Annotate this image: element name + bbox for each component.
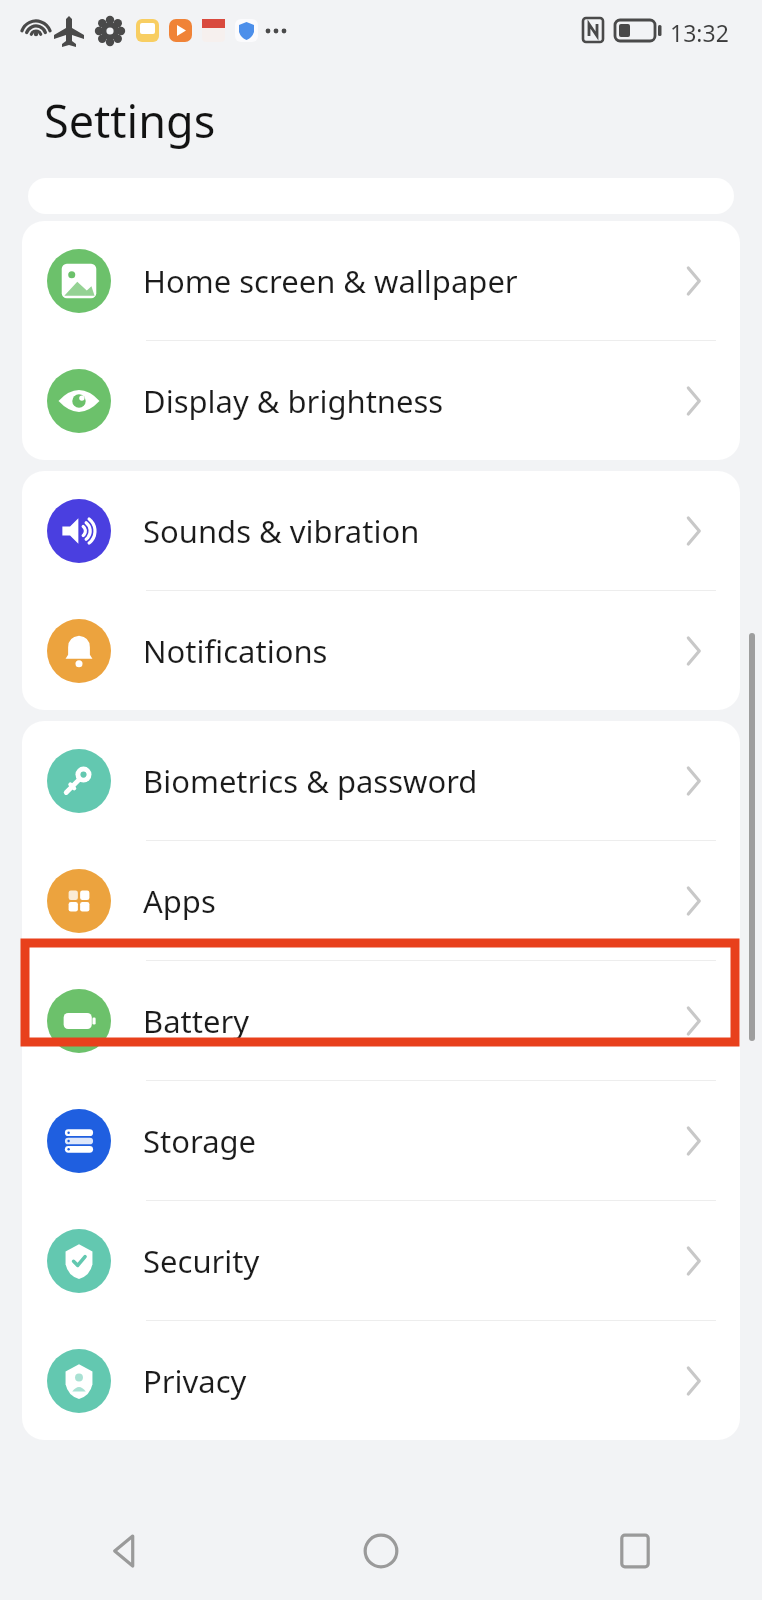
button[interactable]: Privacy bbox=[22, 1321, 740, 1440]
button[interactable]: Notifications bbox=[22, 591, 740, 710]
button[interactable]: Back bbox=[0, 1502, 254, 1600]
button[interactable]: Sounds & vibration bbox=[22, 471, 740, 590]
button[interactable]: Home bbox=[254, 1502, 508, 1600]
button[interactable]: Home screen & wallpaper bbox=[22, 221, 740, 340]
staticText: Settings bbox=[44, 90, 216, 151]
staticText: Biometrics & password bbox=[143, 760, 478, 802]
button[interactable]: Biometrics & password bbox=[22, 721, 740, 840]
staticText: Sounds & vibration bbox=[143, 510, 420, 552]
staticText: Display & brightness bbox=[143, 380, 444, 422]
staticText: Privacy bbox=[143, 1360, 247, 1402]
button[interactable]: Battery bbox=[22, 961, 740, 1080]
staticText: 13:32 bbox=[670, 17, 729, 48]
button[interactable]: Display & brightness bbox=[22, 341, 740, 460]
button[interactable]: Recent apps bbox=[508, 1502, 762, 1600]
button[interactable]: Storage bbox=[22, 1081, 740, 1200]
button[interactable]: Security bbox=[22, 1201, 740, 1320]
staticText: Notifications bbox=[143, 630, 328, 672]
staticText: Security bbox=[143, 1240, 260, 1282]
staticText: Home screen & wallpaper bbox=[143, 260, 518, 302]
staticText: Storage bbox=[143, 1120, 257, 1162]
staticText: Apps bbox=[143, 880, 216, 922]
staticText: Battery bbox=[143, 1000, 250, 1042]
button[interactable]: Apps bbox=[22, 841, 740, 960]
